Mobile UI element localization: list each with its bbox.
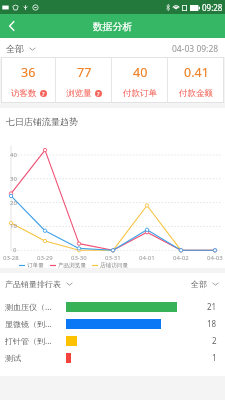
button[interactable]: 显微镜（到...	[0, 315, 225, 332]
staticText: ?	[42, 90, 45, 97]
button[interactable]: 0.41	[168, 57, 224, 103]
staticText: 03-29	[37, 254, 53, 262]
button[interactable]: 全部	[191, 278, 225, 290]
staticText: ?	[97, 90, 100, 97]
button[interactable]: 全部	[6, 40, 36, 55]
staticText: 20	[10, 199, 17, 207]
staticText: 产品销量排行表	[5, 279, 61, 289]
staticText: 04-03 09:28	[172, 43, 219, 55]
staticText: 09:28	[202, 2, 223, 13]
staticText: 21	[207, 301, 217, 312]
staticText: 77	[77, 64, 92, 81]
staticText: 1	[212, 352, 217, 363]
staticText: 03-30	[71, 254, 87, 262]
button[interactable]: 打针管（到...	[0, 332, 225, 349]
staticText: 18	[207, 318, 217, 329]
staticText: 全部	[191, 279, 207, 289]
staticText: 显微镜（到...	[5, 318, 52, 329]
staticText: 04-01	[139, 254, 155, 262]
staticText: 测血压仪（...	[5, 301, 52, 312]
staticText: 03-31	[105, 254, 121, 262]
staticText: 10	[10, 222, 17, 230]
staticText: 36	[21, 64, 36, 81]
staticText: 数据分析	[93, 21, 133, 33]
staticText: 30	[10, 175, 17, 183]
button[interactable]: 测试	[0, 349, 225, 366]
staticText: 03-28	[3, 254, 19, 262]
staticText: 付款订单	[123, 88, 157, 99]
button[interactable]: 产品销量排行表	[0, 278, 73, 290]
staticText: 七日店铺流量趋势	[6, 116, 78, 127]
button[interactable]: 40	[112, 57, 168, 103]
staticText: 浏览量	[66, 88, 92, 99]
staticText: 2	[212, 335, 217, 346]
button[interactable]: 77	[56, 57, 112, 103]
staticText: 订单量	[27, 262, 44, 269]
staticText: 店铺访问量	[100, 262, 128, 269]
staticText: 40	[133, 64, 148, 81]
staticText: 04-02	[173, 254, 189, 262]
staticText: 0	[13, 246, 17, 254]
staticText: 全部	[6, 43, 24, 54]
staticText: 测试	[5, 353, 21, 363]
button[interactable]: Back	[0, 14, 24, 38]
button[interactable]: 测血压仪（...	[0, 298, 225, 315]
staticText: 付款金额	[179, 88, 213, 99]
staticText: 0.41	[184, 64, 209, 81]
staticText: 访客数	[11, 88, 37, 99]
staticText: 产品浏览量	[58, 262, 86, 269]
staticText: 40	[10, 151, 17, 159]
staticText: 打针管（到...	[5, 335, 52, 346]
staticText: 04-03	[207, 254, 223, 262]
button[interactable]: 36	[1, 57, 56, 103]
